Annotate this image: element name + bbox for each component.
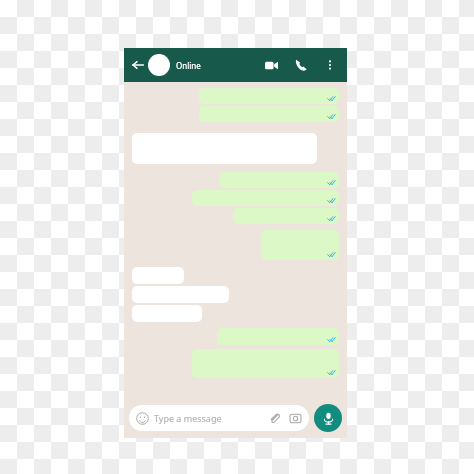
button[interactable]: Video call <box>261 55 281 75</box>
button[interactable] <box>217 328 339 345</box>
button[interactable]: Emoji <box>129 405 309 431</box>
button[interactable]: Record voice message <box>314 404 342 432</box>
button[interactable]: Attach <box>267 411 281 425</box>
button[interactable] <box>132 305 202 322</box>
button[interactable]: Voice call <box>291 55 311 75</box>
button[interactable] <box>261 230 339 260</box>
button[interactable] <box>132 286 229 303</box>
staticText: Online <box>176 60 201 71</box>
button[interactable]: More options <box>321 56 339 74</box>
button[interactable] <box>132 267 184 284</box>
button[interactable] <box>199 88 339 104</box>
button[interactable] <box>233 208 339 224</box>
staticText: Type a message <box>154 412 267 424</box>
button[interactable]: Back <box>130 57 146 73</box>
button[interactable] <box>192 190 339 206</box>
button[interactable] <box>199 106 339 122</box>
button[interactable]: Camera <box>288 411 302 425</box>
button[interactable]: Emoji <box>136 412 149 425</box>
button[interactable] <box>192 349 339 378</box>
button[interactable] <box>219 172 339 188</box>
button[interactable]: Contact avatar <box>148 54 170 76</box>
